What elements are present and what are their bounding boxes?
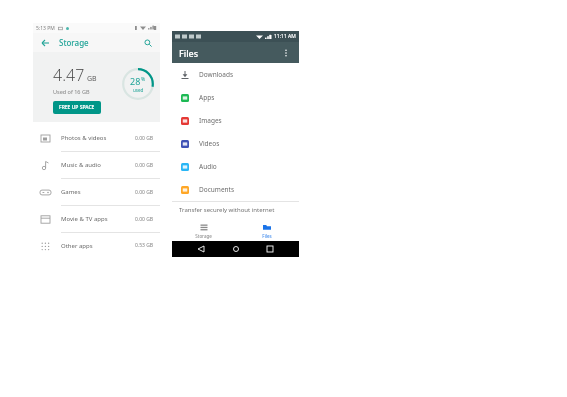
staticText: Music & audio: [61, 161, 101, 169]
staticText: Apps: [199, 93, 215, 102]
button[interactable]: Videos: [172, 132, 299, 155]
button[interactable]: Music & audio: [33, 152, 160, 179]
staticText: 4.47: [53, 64, 85, 86]
staticText: used: [133, 87, 144, 93]
staticText: 0.00 GB: [135, 135, 154, 142]
button[interactable]: Photos & videos: [33, 125, 160, 152]
staticText: Used of 16 GB: [53, 88, 90, 95]
staticText: %: [141, 76, 146, 83]
staticText: Downloads: [199, 70, 234, 79]
staticText: Videos: [199, 139, 220, 148]
staticText: Photos & videos: [61, 134, 107, 142]
staticText: 0.00 GB: [135, 162, 154, 169]
staticText: Storage: [59, 37, 89, 48]
staticText: Files: [179, 47, 199, 59]
button[interactable]: Search: [142, 37, 154, 49]
staticText: Transfer securely without internet: [179, 206, 275, 214]
staticText: Documents: [199, 185, 235, 194]
button[interactable]: Other apps: [33, 233, 160, 258]
button[interactable]: FREE UP SPACE: [53, 101, 101, 114]
button[interactable]: Storage: [172, 221, 235, 241]
button[interactable]: Documents: [172, 178, 299, 201]
staticText: Movie & TV apps: [61, 215, 108, 223]
button[interactable]: Audio: [172, 155, 299, 178]
button[interactable]: Back: [195, 243, 207, 255]
staticText: Audio: [199, 162, 217, 171]
staticText: 11:11 AM: [274, 33, 296, 40]
button[interactable]: More options: [280, 47, 292, 59]
staticText: Other apps: [61, 242, 93, 250]
button[interactable]: Games: [33, 179, 160, 206]
button[interactable]: Recents: [264, 243, 276, 255]
staticText: 28: [130, 75, 141, 87]
staticText: 0.00 GB: [135, 216, 154, 223]
staticText: 0.00 GB: [135, 189, 154, 196]
button[interactable]: Apps: [172, 86, 299, 109]
button[interactable]: Movie & TV apps: [33, 206, 160, 233]
button[interactable]: Images: [172, 109, 299, 132]
button[interactable]: Home: [230, 243, 242, 255]
staticText: Images: [199, 116, 222, 125]
staticText: 0.53 GB: [135, 242, 154, 249]
staticText: FREE UP SPACE: [59, 104, 95, 111]
staticText: Files: [262, 233, 272, 239]
staticText: Games: [61, 188, 81, 196]
button[interactable]: Downloads: [172, 63, 299, 86]
staticText: 5:13 PM: [36, 25, 55, 32]
button[interactable]: Files: [235, 221, 299, 241]
staticText: Storage: [195, 233, 212, 239]
staticText: GB: [87, 74, 97, 84]
button[interactable]: Back: [39, 37, 51, 49]
